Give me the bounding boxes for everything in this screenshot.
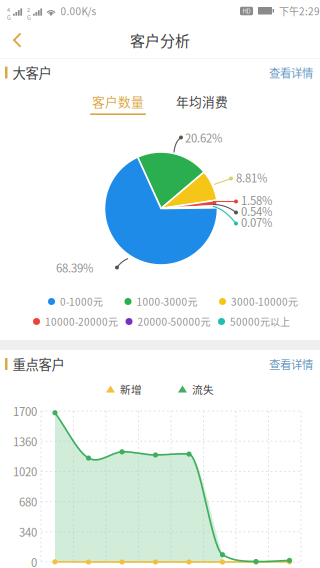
button[interactable]: 查看详情 [266, 352, 316, 376]
staticText: 大客户 [12, 63, 51, 82]
button[interactable]: 年均消费 [171, 88, 233, 115]
staticText: 4G [7, 5, 11, 22]
staticText: 新增 [120, 381, 142, 397]
staticText: 重点客户 [12, 354, 64, 374]
staticText: 3000-10000元 [231, 294, 298, 309]
staticText: 1700 [13, 403, 37, 419]
staticText: 0.54% [241, 203, 272, 219]
staticText: 客户分析 [130, 29, 190, 51]
staticText: 1.58% [241, 192, 272, 208]
staticText: 340 [19, 524, 37, 540]
staticText: 下午2:29 [279, 4, 320, 18]
staticText: 1000-3000元 [136, 294, 197, 309]
staticText: 客户数量 [92, 92, 144, 110]
staticText: 0.07% [241, 214, 272, 230]
staticText: 1020 [13, 463, 37, 480]
staticText: HD [242, 7, 250, 15]
button[interactable]: 查看详情 [266, 60, 316, 85]
staticText: 20000-50000元 [137, 314, 210, 329]
staticText: 0.00K/s [60, 4, 96, 18]
staticText: 10000-20000元 [45, 314, 118, 329]
staticText: 2G [27, 5, 31, 22]
staticText: 流失 [192, 381, 214, 397]
staticText: 0-1000元 [60, 294, 103, 309]
staticText: 50000元以上 [230, 314, 290, 329]
staticText: 680 [19, 493, 37, 510]
staticText: 20.62% [185, 129, 222, 146]
staticText: 查看详情 [269, 356, 313, 372]
button[interactable]: 客户数量 [87, 88, 149, 115]
staticText: 1360 [13, 433, 37, 449]
staticText: 0 [31, 554, 37, 568]
staticText: 8.81% [236, 169, 267, 186]
staticText: 年均消费 [176, 92, 228, 110]
staticText: 68.39% [56, 259, 93, 276]
button[interactable]: 返回 [0, 22, 34, 58]
staticText: 查看详情 [269, 64, 313, 81]
